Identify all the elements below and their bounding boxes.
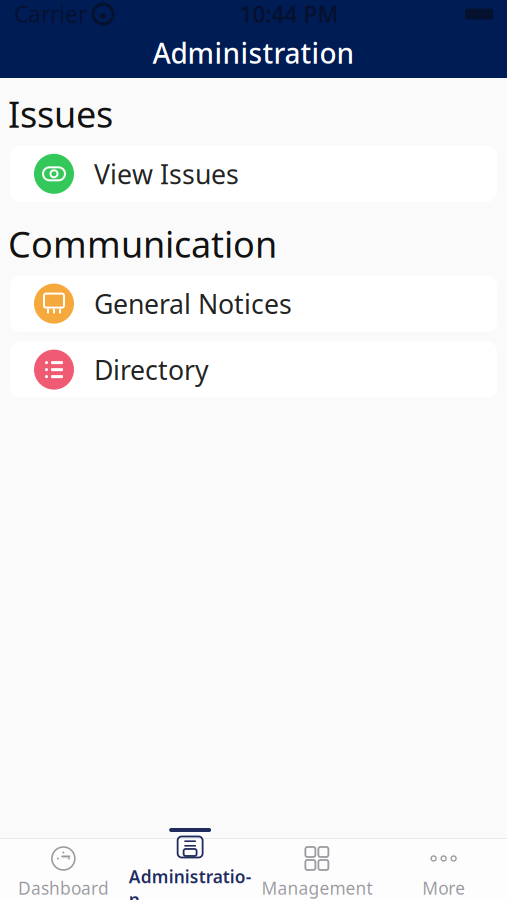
button[interactable]: More [380, 839, 507, 900]
staticText: Carrier [14, 0, 87, 29]
staticText: General Notices [94, 286, 292, 321]
staticText: Issues [8, 90, 113, 138]
button[interactable]: Directory [0, 342, 507, 398]
staticText: Directory [94, 352, 209, 387]
staticText: 10:44 PM [239, 0, 338, 29]
staticText: Administration [152, 34, 354, 72]
button[interactable]: Management [253, 839, 380, 900]
button[interactable]: General Notices [0, 276, 507, 332]
staticText: Dashboard [18, 876, 109, 899]
button[interactable]: Dashboard [0, 839, 127, 900]
staticText: More [422, 876, 465, 899]
button[interactable]: Administration [127, 839, 254, 900]
staticText: Communication [8, 220, 277, 268]
staticText: View Issues [94, 156, 239, 191]
button[interactable]: View Issues [0, 146, 507, 202]
staticText: Administration [129, 865, 252, 900]
staticText: Management [261, 876, 372, 899]
